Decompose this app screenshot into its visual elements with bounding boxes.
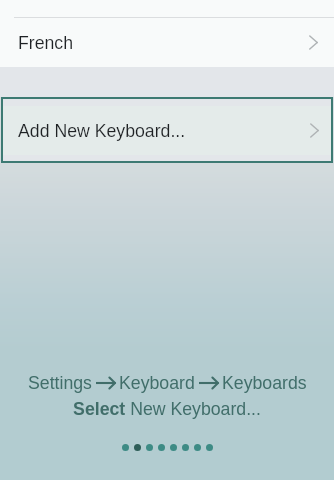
staticText: Keyboard bbox=[119, 373, 195, 393]
staticText: Keyboards bbox=[222, 373, 307, 393]
staticText: Settings bbox=[28, 373, 92, 393]
staticText: Select New Keyboard... bbox=[73, 399, 261, 419]
staticText: French bbox=[18, 33, 74, 53]
button[interactable]: Add New Keyboard... bbox=[3, 99, 331, 161]
staticText: Add New Keyboard... bbox=[18, 121, 186, 141]
button[interactable]: French bbox=[0, 18, 334, 67]
